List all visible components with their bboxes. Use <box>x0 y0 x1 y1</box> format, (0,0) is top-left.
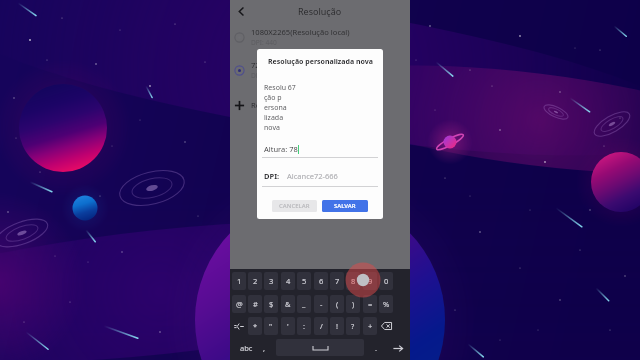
button[interactable]: SALVAR <box>322 200 368 212</box>
button[interactable]: 9 <box>363 272 377 290</box>
staticText: * <box>253 321 258 331</box>
button[interactable]: Apagar <box>379 317 393 335</box>
button[interactable]: CANCELAR <box>272 200 317 212</box>
staticText: _ <box>302 299 306 309</box>
button[interactable]: Mais símbolos <box>232 317 246 335</box>
staticText: : <box>303 321 306 331</box>
staticText: ( <box>336 299 339 309</box>
staticText: lizada <box>264 113 284 123</box>
staticText: abc <box>240 343 253 353</box>
button[interactable]: Enter <box>388 338 408 358</box>
button[interactable]: ( <box>330 295 344 313</box>
button[interactable]: / <box>314 317 328 335</box>
button[interactable]: 2 <box>248 272 262 290</box>
staticText: Altura: 78 <box>264 144 298 154</box>
button[interactable]: 7 <box>330 272 344 290</box>
button[interactable]: % <box>379 295 393 313</box>
staticText: Resolução <box>298 5 342 17</box>
staticText: ! <box>336 321 339 331</box>
button[interactable]: # <box>248 295 262 313</box>
button[interactable]: & <box>281 295 295 313</box>
staticText: # <box>253 299 258 309</box>
staticText: 720X1520 <box>251 60 286 70</box>
staticText: % <box>383 299 390 309</box>
staticText: 8 <box>351 276 356 286</box>
button[interactable]: 1080X2265(Resolução local) <box>230 22 410 52</box>
button[interactable]: : <box>297 317 311 335</box>
staticText: ção p <box>264 93 282 103</box>
button[interactable]: " <box>264 317 278 335</box>
staticText: SALVAR <box>334 202 356 210</box>
staticText: Resolução personalizada nova <box>251 100 359 110</box>
staticText: 1080X2265(Resolução local) <box>251 27 350 37</box>
staticText: Alcance72-666 <box>287 171 338 181</box>
button[interactable]: + <box>363 317 377 335</box>
staticText: . <box>375 343 378 353</box>
staticText: DPI: 440 <box>251 38 277 47</box>
staticText: Resolução personalizada nova <box>268 57 373 67</box>
staticText: = <box>368 299 373 309</box>
staticText: @ <box>236 299 243 309</box>
staticText: DPI: <box>264 171 280 181</box>
staticText: Resolu 67 <box>264 83 296 93</box>
staticText: 3 <box>269 276 274 286</box>
button[interactable]: ? <box>346 317 360 335</box>
staticText: ' <box>287 321 289 331</box>
button[interactable]: ' <box>281 317 295 335</box>
staticText: 0 <box>384 276 389 286</box>
staticText: 1 <box>237 276 242 286</box>
button[interactable]: * <box>248 317 262 335</box>
staticText: " <box>269 321 273 331</box>
staticText: 5 <box>302 276 307 286</box>
staticText: ersona <box>264 103 287 113</box>
button[interactable]: ! <box>330 317 344 335</box>
staticText: 4 <box>286 276 291 286</box>
staticText: - <box>320 299 323 309</box>
staticText: 2 <box>253 276 258 286</box>
button[interactable]: abc <box>232 338 260 358</box>
button[interactable]: . <box>366 338 386 358</box>
staticText: , <box>263 343 266 353</box>
staticText: ? <box>351 321 355 331</box>
button[interactable]: 1 <box>232 272 246 290</box>
button[interactable]: Adicionar <box>230 93 410 117</box>
staticText: / <box>320 321 323 331</box>
button[interactable]: ) <box>346 295 360 313</box>
button[interactable]: Espaço <box>276 339 364 356</box>
button[interactable]: - <box>314 295 328 313</box>
staticText: ) <box>352 299 355 309</box>
button[interactable]: 8 <box>346 272 360 290</box>
button[interactable]: _ <box>297 295 311 313</box>
button[interactable]: 4 <box>281 272 295 290</box>
button[interactable]: 3 <box>264 272 278 290</box>
button[interactable]: 5 <box>297 272 311 290</box>
staticText: + <box>368 321 373 331</box>
staticText: & <box>285 299 291 309</box>
staticText: nova <box>264 123 280 133</box>
staticText: CANCELAR <box>279 202 310 210</box>
button[interactable]: $ <box>264 295 278 313</box>
button[interactable]: = <box>363 295 377 313</box>
staticText: $ <box>269 299 274 309</box>
button[interactable]: 720X1520 <box>230 55 410 85</box>
button[interactable]: , <box>254 338 274 358</box>
staticText: 9 <box>368 276 373 286</box>
staticText: 7 <box>335 276 340 286</box>
button[interactable]: @ <box>232 295 246 313</box>
button[interactable]: 0 <box>379 272 393 290</box>
staticText: 6 <box>319 276 324 286</box>
staticText: DPI: 320 <box>251 71 277 80</box>
button[interactable]: Voltar <box>230 0 252 22</box>
button[interactable]: 6 <box>314 272 328 290</box>
other: Adicionar <box>233 99 246 112</box>
